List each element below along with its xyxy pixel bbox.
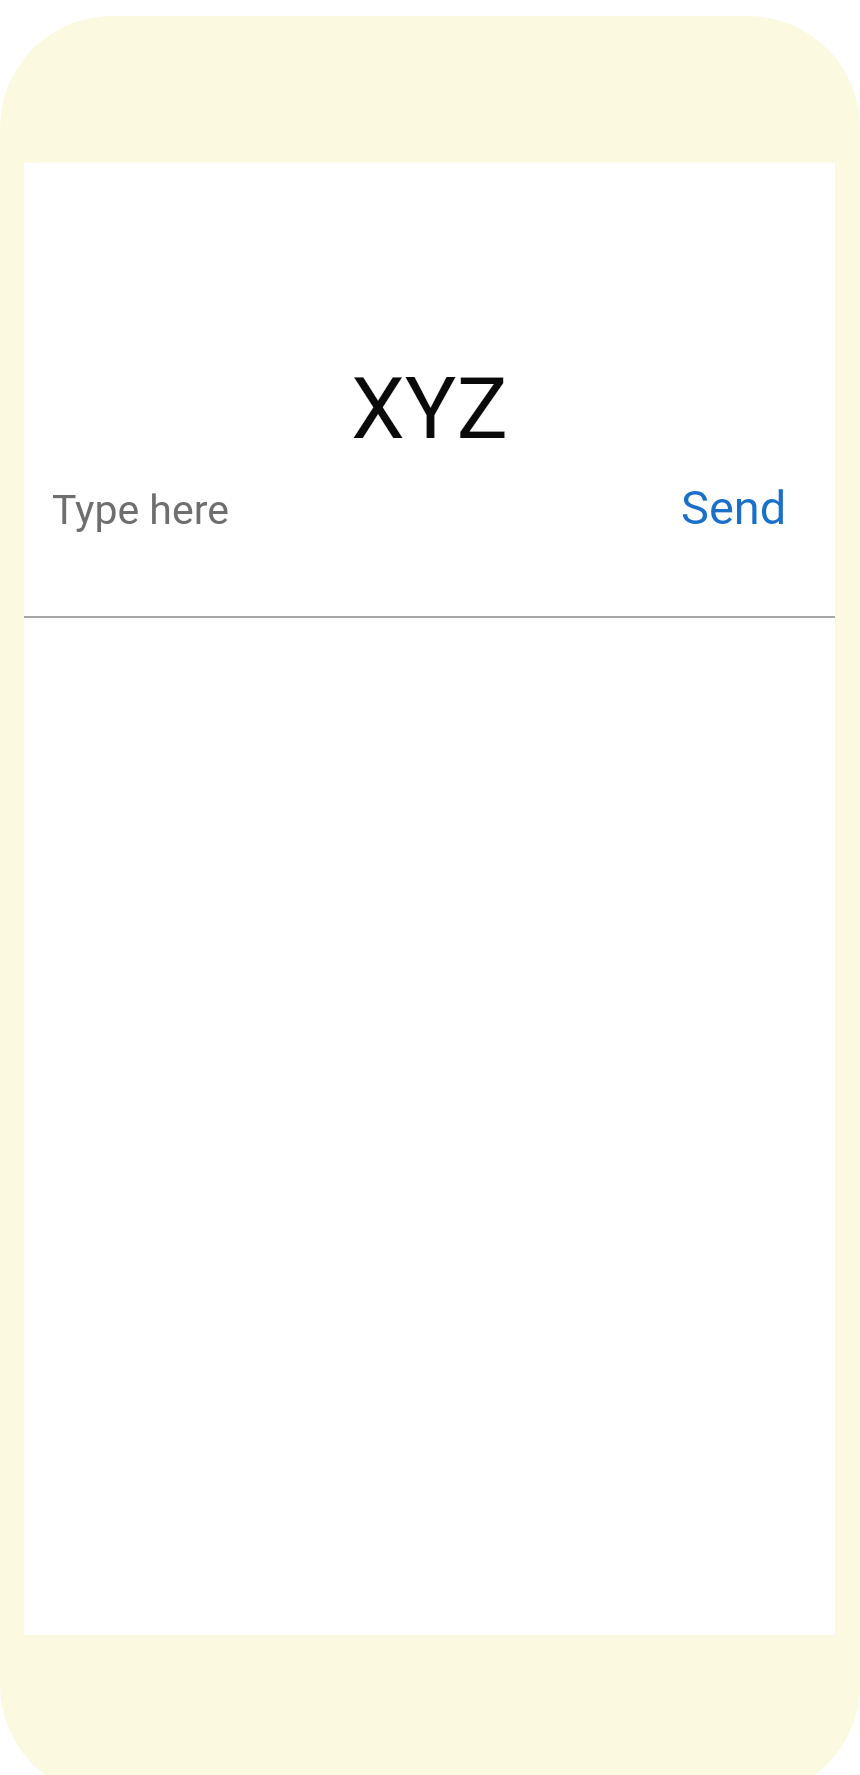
button[interactable]: Send [661,427,807,587]
staticText: Type here [52,486,229,534]
button[interactable]: Type here [24,427,661,587]
staticText: Send [681,480,787,535]
staticText: XYZ [24,358,835,459]
